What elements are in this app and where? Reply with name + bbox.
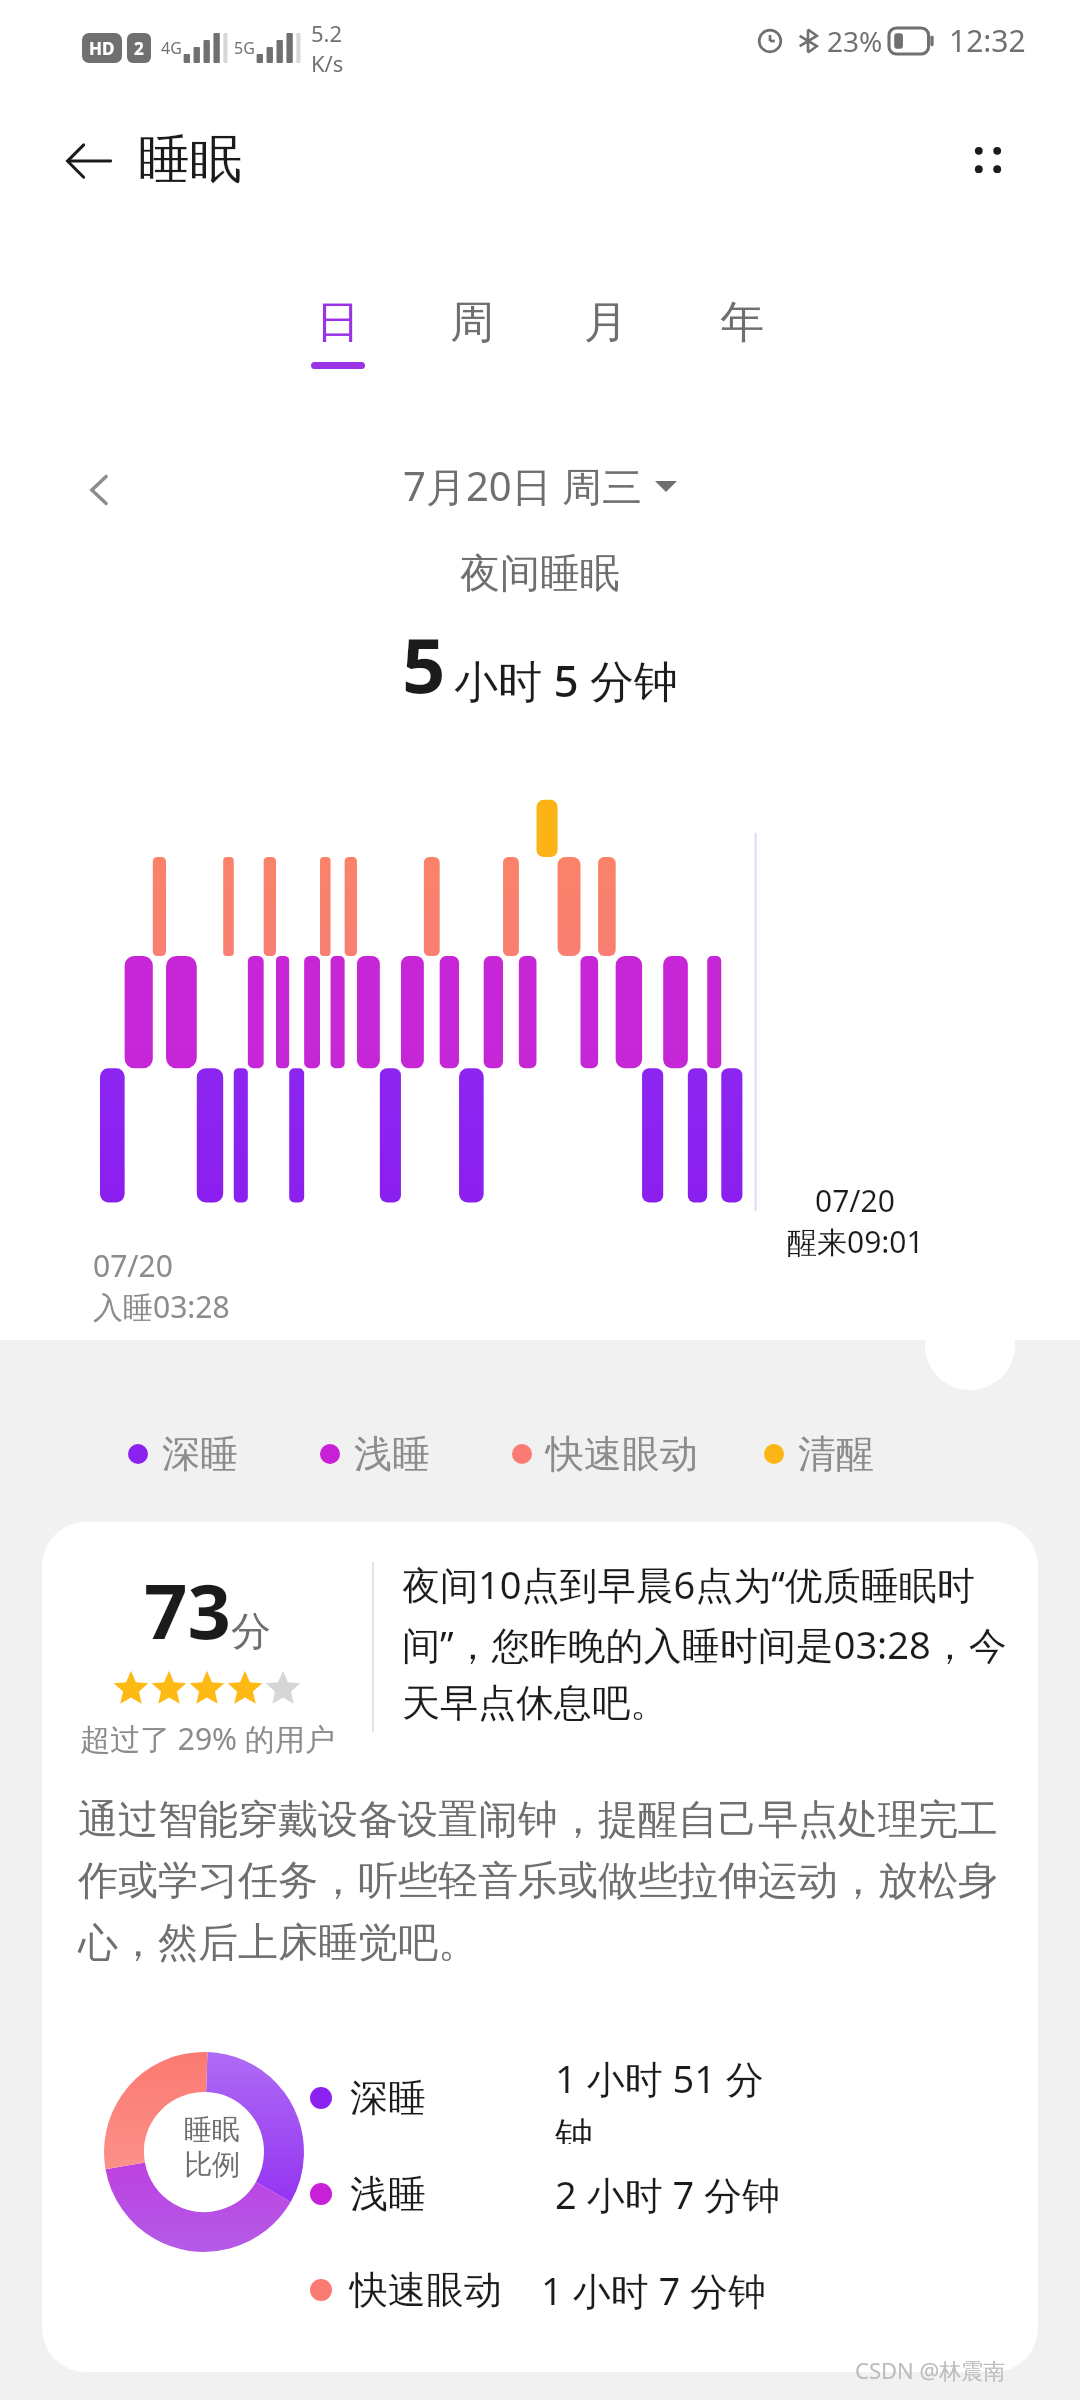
staticText: 入睡03:28 bbox=[93, 1286, 230, 1327]
staticText: 小时 5 分钟 bbox=[454, 650, 679, 710]
staticText: K/s bbox=[311, 48, 344, 78]
staticText: 周 bbox=[450, 295, 494, 350]
staticText: 5G bbox=[234, 37, 255, 59]
staticText: 夜间10点到早晨6点为“优质睡眠时间”，您昨晚的入睡时间是03:28，今天早点休… bbox=[402, 1558, 1020, 1728]
staticText: 2 bbox=[134, 37, 144, 60]
staticText: 1 小时 51 分 钟 bbox=[555, 2052, 764, 2144]
button[interactable]: Previous day bbox=[60, 450, 140, 530]
staticText: 快速眼动 bbox=[350, 2266, 502, 2314]
staticText: 深睡 bbox=[162, 1430, 238, 1478]
staticText: 年 bbox=[720, 295, 764, 350]
staticText: CSDN @林震南 bbox=[855, 2355, 1006, 2385]
staticText: 快速眼动 bbox=[546, 1430, 698, 1478]
button[interactable]: 日 bbox=[278, 295, 398, 405]
staticText: 通过智能穿戴设备设置闹钟，提醒自己早点处理完工作或学习任务，听些轻音乐或做些拉伸… bbox=[78, 1794, 1002, 1968]
button[interactable]: Scroll up bbox=[925, 1300, 1015, 1390]
staticText: 12:32 bbox=[949, 20, 1026, 61]
staticText: 73 bbox=[144, 1558, 231, 1662]
staticText: 睡眠 bbox=[138, 127, 242, 193]
button[interactable]: More options bbox=[948, 120, 1028, 200]
staticText: 醒来09:01 bbox=[787, 1221, 924, 1262]
staticText: 23% bbox=[827, 22, 883, 60]
button[interactable]: 73 bbox=[42, 1522, 1038, 2372]
staticText: 5 bbox=[402, 612, 446, 716]
button[interactable]: Back bbox=[48, 120, 128, 200]
staticText: 4G bbox=[161, 37, 182, 59]
staticText: 深睡 bbox=[350, 2074, 426, 2122]
staticText: 2 小时 7 分钟 bbox=[555, 2168, 781, 2220]
staticText: 浅睡 bbox=[354, 1430, 430, 1478]
staticText: 睡眠 bbox=[184, 2112, 240, 2147]
button[interactable]: 7月20日 周三 bbox=[395, 452, 685, 519]
staticText: 日 bbox=[316, 295, 360, 350]
staticText: 超过了 29% 的用户 bbox=[80, 1718, 335, 1759]
staticText: 比例 bbox=[184, 2147, 240, 2182]
staticText: HD bbox=[89, 37, 115, 60]
staticText: 清醒 bbox=[798, 1430, 874, 1478]
staticText: 分 bbox=[231, 1606, 271, 1656]
staticText: 07/20 bbox=[815, 1180, 895, 1221]
staticText: 月 bbox=[584, 295, 628, 350]
staticText: 浅睡 bbox=[350, 2170, 426, 2218]
staticText: 07/20 bbox=[93, 1245, 173, 1286]
staticText: 7月20日 周三 bbox=[403, 458, 643, 513]
staticText: 夜间睡眠 bbox=[460, 548, 620, 598]
button[interactable]: 月 bbox=[546, 295, 666, 405]
button[interactable]: 年 bbox=[682, 295, 802, 405]
staticText: 5.2 bbox=[311, 18, 343, 48]
button[interactable]: 周 bbox=[412, 295, 532, 405]
staticText: 1 小时 7 分钟 bbox=[541, 2264, 767, 2316]
